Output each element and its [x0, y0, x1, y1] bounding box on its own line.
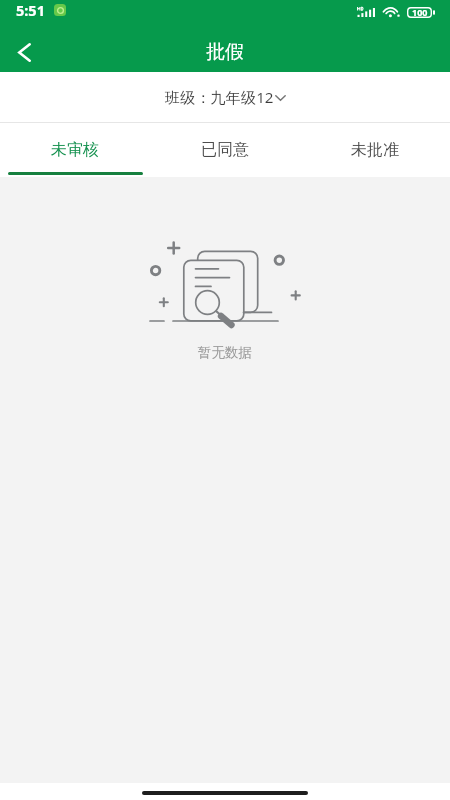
staticText: 暂无数据: [198, 344, 252, 361]
button[interactable]: 班级：九年级12: [165, 87, 286, 108]
staticText: 已同意: [201, 140, 249, 160]
button[interactable]: 未批准: [300, 123, 450, 171]
staticText: 未审核: [51, 140, 99, 160]
staticText: 未批准: [351, 140, 399, 160]
staticText: 5:51: [16, 0, 45, 20]
button[interactable]: 未审核: [0, 123, 150, 171]
button[interactable]: Back: [0, 28, 48, 72]
staticText: 班级：九年级12: [165, 87, 274, 108]
staticText: 100: [412, 6, 428, 18]
staticText: 批假: [206, 40, 244, 64]
button[interactable]: 已同意: [150, 123, 300, 171]
